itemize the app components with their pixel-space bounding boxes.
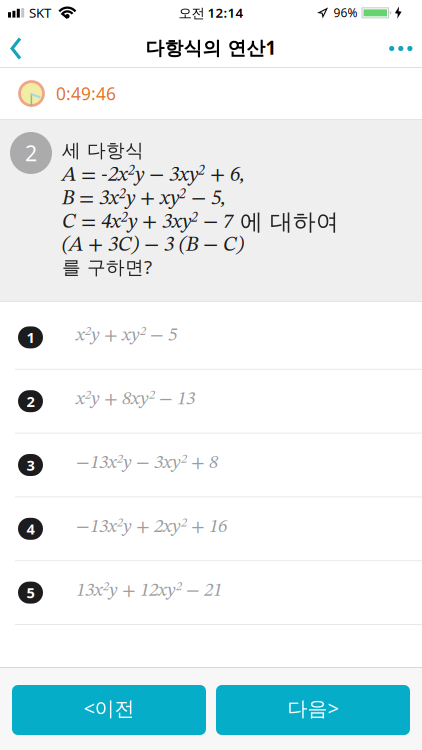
staticText: x2y + xy2 − 5	[76, 326, 177, 345]
staticText: 1	[26, 328, 34, 347]
staticText: −13x2y + 2xy2 + 16	[76, 517, 227, 536]
staticText: 세 다항식	[62, 139, 144, 162]
staticText: 를 구하면?	[62, 254, 152, 279]
button[interactable]: More	[379, 33, 422, 64]
button[interactable]: 3	[0, 434, 422, 497]
button[interactable]: 1	[0, 306, 422, 370]
button[interactable]: 4	[0, 497, 422, 561]
staticText: B = 3x2y + xy2 − 5,	[62, 188, 226, 209]
staticText: 2	[26, 391, 34, 411]
staticText: <이전	[83, 695, 134, 721]
staticText: 3	[26, 455, 34, 475]
button[interactable]: 2	[0, 370, 422, 434]
staticText: 96%	[333, 5, 357, 20]
staticText: A = -2x2y − 3xy2 + 6,	[62, 164, 245, 185]
staticText: C = 4x2y + 3xy2 − 7	[62, 211, 233, 233]
staticText: 에 대하여	[240, 208, 339, 236]
staticText: (A + 3C) − 3 (B − C)	[62, 235, 244, 255]
staticText: 0:49:46	[56, 82, 116, 105]
staticText: 다항식의 연산1	[145, 35, 276, 60]
staticText: 오전 12:14	[178, 4, 243, 21]
staticText: 4	[26, 519, 34, 539]
staticText: x2y + 8xy2 − 13	[76, 389, 195, 409]
staticText: 5	[26, 583, 34, 602]
button[interactable]: Back	[0, 30, 37, 67]
staticText: 2	[25, 139, 37, 167]
staticText: SKT	[29, 4, 51, 21]
button[interactable]: 다음>	[216, 685, 410, 735]
button[interactable]: 5	[0, 561, 422, 625]
staticText: 13x2y + 12xy2 − 21	[76, 581, 222, 600]
staticText: −13x2y − 3xy2 + 8	[76, 453, 218, 472]
staticText: 다음>	[287, 695, 338, 721]
button[interactable]: <이전	[12, 685, 206, 735]
